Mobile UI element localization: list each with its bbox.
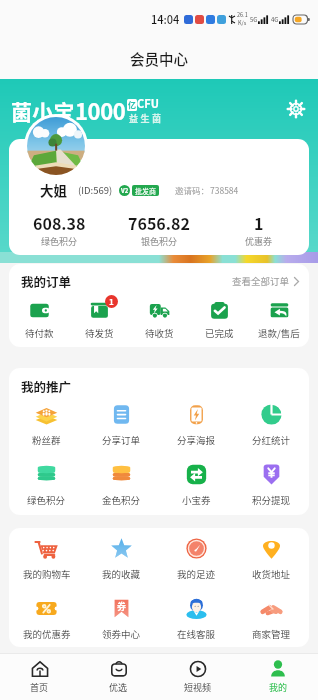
staticText: 608.38 bbox=[33, 211, 86, 234]
staticText: 在线客服 bbox=[177, 627, 216, 641]
staticText: 小宝券 bbox=[182, 493, 211, 507]
staticText: K/s bbox=[238, 19, 247, 27]
staticText: 我的优惠券 bbox=[23, 627, 71, 641]
staticText: 我的足迹 bbox=[177, 567, 216, 581]
button[interactable]: 分享海报 bbox=[159, 403, 234, 447]
button[interactable]: 金色积分 bbox=[84, 463, 159, 507]
button[interactable]: 查看全部订单 bbox=[232, 272, 299, 290]
staticText: 分享海报 bbox=[177, 433, 216, 447]
staticText: 我的收藏 bbox=[102, 567, 141, 581]
staticText: 我的购物车 bbox=[23, 567, 71, 581]
button[interactable]: 头像 bbox=[27, 117, 85, 175]
staticText: 积分提现 bbox=[252, 493, 291, 507]
button[interactable]: 已完成 bbox=[189, 302, 249, 340]
staticText: 待付款 bbox=[25, 326, 54, 340]
staticText: 收货地址 bbox=[252, 567, 291, 581]
button[interactable]: 收货地址 bbox=[234, 537, 309, 581]
staticText: 商家管理 bbox=[252, 627, 291, 641]
staticText: 我的推广 bbox=[21, 377, 72, 395]
button[interactable]: 待付款 bbox=[9, 302, 69, 340]
staticText: 邀请码： bbox=[175, 184, 210, 196]
button[interactable]: 待收货 bbox=[129, 302, 189, 340]
staticText: 我的 bbox=[269, 681, 288, 694]
staticText: 1000 bbox=[75, 94, 126, 126]
staticText: 金色积分 bbox=[102, 493, 141, 507]
button[interactable]: 粉丝群 bbox=[9, 403, 84, 447]
button[interactable]: 设置 bbox=[284, 97, 308, 121]
button[interactable]: 我的购物车 bbox=[9, 537, 84, 581]
button[interactable]: 我的收藏 bbox=[84, 537, 159, 581]
button[interactable]: 608.38 bbox=[9, 211, 109, 248]
button[interactable]: 绿色积分 bbox=[9, 463, 84, 507]
button[interactable]: 我的足迹 bbox=[159, 537, 234, 581]
staticText: 亿 bbox=[128, 99, 136, 111]
staticText: 1 bbox=[254, 211, 264, 234]
button[interactable]: 积分提现 bbox=[234, 463, 309, 507]
staticText: 14:04 bbox=[151, 11, 180, 27]
staticText: 1 bbox=[109, 296, 114, 308]
button[interactable]: 分红统计 bbox=[234, 403, 309, 447]
button[interactable]: 1 bbox=[69, 302, 129, 340]
staticText: 券 bbox=[117, 600, 127, 613]
staticText: (ID:569) bbox=[78, 183, 113, 197]
staticText: 银色积分 bbox=[141, 235, 178, 248]
staticText: 粉丝群 bbox=[32, 433, 61, 447]
button[interactable]: 短视频 bbox=[158, 654, 238, 700]
staticText: 分享订单 bbox=[102, 433, 141, 447]
staticText: V2 bbox=[121, 186, 129, 195]
staticText: 26.1 bbox=[237, 11, 248, 19]
staticText: 我的订单 bbox=[21, 272, 72, 290]
staticText: 优惠券 bbox=[245, 235, 273, 248]
button[interactable]: 小宝券 bbox=[159, 463, 234, 507]
staticText: 领券中心 bbox=[102, 627, 141, 641]
staticText: 优选 bbox=[109, 681, 128, 694]
button[interactable]: 1 bbox=[209, 211, 309, 248]
staticText: 绿色积分 bbox=[41, 235, 78, 248]
button[interactable]: 分享订单 bbox=[84, 403, 159, 447]
staticText: 分红统计 bbox=[252, 433, 291, 447]
staticText: 益生菌 bbox=[129, 112, 164, 125]
staticText: 待收货 bbox=[145, 326, 174, 340]
staticText: 退款/售后 bbox=[258, 326, 300, 340]
button[interactable]: 在线客服 bbox=[159, 597, 234, 641]
staticText: 绿色积分 bbox=[27, 493, 66, 507]
staticText: 738584 bbox=[210, 184, 239, 196]
staticText: 批发商 bbox=[135, 186, 156, 196]
staticText: 7656.82 bbox=[128, 211, 190, 234]
staticText: 菌小宝 bbox=[11, 96, 75, 126]
staticText: 5G bbox=[250, 15, 258, 24]
staticText: 短视频 bbox=[184, 681, 212, 694]
button[interactable]: 退款/售后 bbox=[249, 302, 309, 340]
staticText: 待发货 bbox=[85, 326, 114, 340]
staticText: CFU bbox=[137, 95, 159, 111]
button[interactable]: 7656.82 bbox=[109, 211, 209, 248]
staticText: 已完成 bbox=[205, 326, 234, 340]
staticText: 会员中心 bbox=[130, 48, 188, 69]
staticText: 首页 bbox=[30, 681, 49, 694]
button[interactable]: 我的 bbox=[238, 654, 318, 700]
staticText: 大姐 bbox=[40, 180, 67, 200]
button[interactable]: 我的优惠券 bbox=[9, 597, 84, 641]
button[interactable]: 券 bbox=[84, 597, 159, 641]
button[interactable]: 商家管理 bbox=[234, 597, 309, 641]
staticText: 4G bbox=[271, 15, 279, 24]
button[interactable]: 优选 bbox=[79, 654, 158, 700]
staticText: 查看全部订单 bbox=[232, 274, 290, 288]
button[interactable]: 首页 bbox=[0, 654, 79, 700]
